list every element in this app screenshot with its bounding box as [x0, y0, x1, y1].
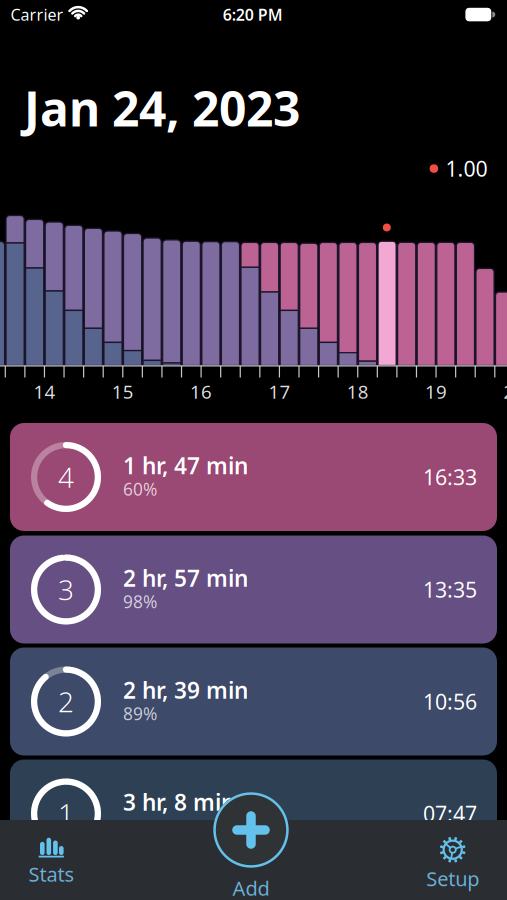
- staticText: 13:35: [423, 575, 477, 604]
- staticText: 1.00: [445, 154, 487, 183]
- staticText: 2 hr, 39 min: [123, 675, 248, 705]
- staticText: 19: [425, 379, 447, 404]
- staticText: 20: [503, 379, 507, 404]
- staticText: 2: [58, 683, 74, 720]
- staticText: 1 hr, 47 min: [123, 450, 248, 480]
- button[interactable]: 2: [10, 647, 497, 755]
- staticText: 07:47: [423, 799, 477, 828]
- staticText: Jan 24, 2023: [24, 76, 300, 140]
- staticText: 1: [58, 795, 74, 832]
- staticText: 6:20 PM: [223, 4, 283, 25]
- button[interactable]: 1: [10, 759, 497, 867]
- staticText: 2 hr, 57 min: [123, 563, 248, 593]
- button[interactable]: Setup: [426, 835, 479, 892]
- staticText: Stats: [28, 861, 74, 887]
- staticText: 95%: [123, 814, 157, 837]
- button[interactable]: 4: [10, 423, 497, 531]
- staticText: 98%: [123, 590, 157, 613]
- button[interactable]: Stats: [28, 835, 74, 887]
- staticText: 15: [112, 379, 134, 404]
- button[interactable]: Add: [206, 786, 296, 900]
- staticText: Setup: [426, 865, 479, 892]
- staticText: Carrier: [10, 4, 63, 25]
- staticText: Add: [232, 875, 269, 900]
- staticText: 18: [347, 379, 369, 404]
- staticText: 3 hr, 8 min: [123, 787, 235, 817]
- staticText: 3: [58, 571, 74, 608]
- button[interactable]: 3: [10, 535, 497, 643]
- staticText: 60%: [123, 477, 157, 500]
- staticText: 16: [190, 379, 212, 404]
- staticText: 16:33: [423, 463, 477, 491]
- staticText: 89%: [123, 702, 157, 725]
- staticText: 10:56: [423, 687, 477, 716]
- staticText: 17: [268, 379, 290, 404]
- staticText: 4: [58, 458, 74, 496]
- staticText: 14: [33, 379, 55, 404]
